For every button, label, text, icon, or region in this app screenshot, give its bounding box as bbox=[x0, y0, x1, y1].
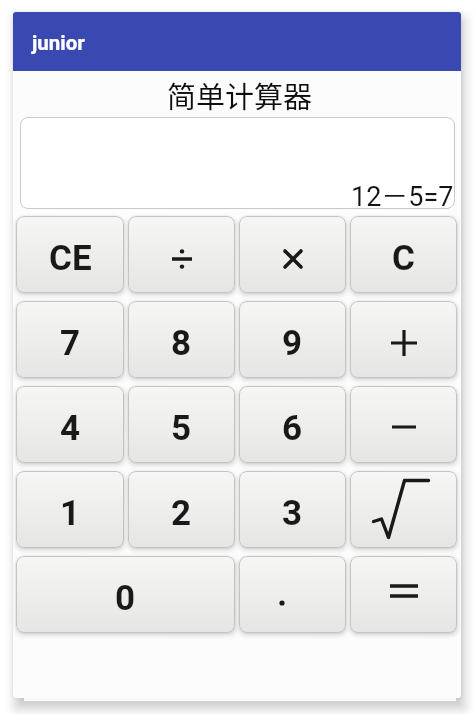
staticText: 4 bbox=[60, 408, 81, 449]
staticText: 7 bbox=[60, 323, 81, 364]
button[interactable]: C bbox=[350, 216, 457, 293]
staticText: 9 bbox=[282, 323, 303, 364]
staticText: 简单计算器 bbox=[167, 74, 313, 116]
button[interactable]: 9 bbox=[239, 301, 346, 378]
button[interactable]: 6 bbox=[239, 386, 346, 463]
staticText: junior bbox=[32, 31, 85, 55]
button[interactable]: 5 bbox=[128, 386, 235, 463]
button[interactable]: CE bbox=[16, 216, 124, 293]
staticText: 12－5=7 bbox=[351, 175, 454, 214]
button[interactable] bbox=[350, 386, 457, 463]
staticText: 6 bbox=[282, 408, 303, 449]
button[interactable]: junior bbox=[13, 12, 461, 71]
button[interactable]: 4 bbox=[16, 386, 124, 463]
staticText: C bbox=[392, 238, 415, 279]
button[interactable]: 12－5=7 bbox=[20, 117, 455, 209]
button[interactable]: 8 bbox=[128, 301, 235, 378]
staticText: 2 bbox=[171, 493, 192, 534]
button[interactable]: 7 bbox=[16, 301, 124, 378]
staticText: 5 bbox=[171, 408, 192, 449]
button[interactable] bbox=[239, 216, 346, 293]
button[interactable] bbox=[350, 471, 457, 548]
button[interactable] bbox=[128, 216, 235, 293]
button[interactable] bbox=[350, 556, 457, 633]
staticText: 3 bbox=[282, 493, 303, 534]
staticText: 0 bbox=[115, 578, 136, 619]
button[interactable]: 2 bbox=[128, 471, 235, 548]
staticText: 1 bbox=[60, 493, 81, 534]
button[interactable]: 1 bbox=[16, 471, 124, 548]
button[interactable]: 3 bbox=[239, 471, 346, 548]
button[interactable]: 0 bbox=[16, 556, 235, 633]
button[interactable] bbox=[350, 301, 457, 378]
staticText: CE bbox=[49, 238, 92, 279]
button[interactable] bbox=[239, 556, 346, 633]
staticText: 8 bbox=[171, 323, 192, 364]
